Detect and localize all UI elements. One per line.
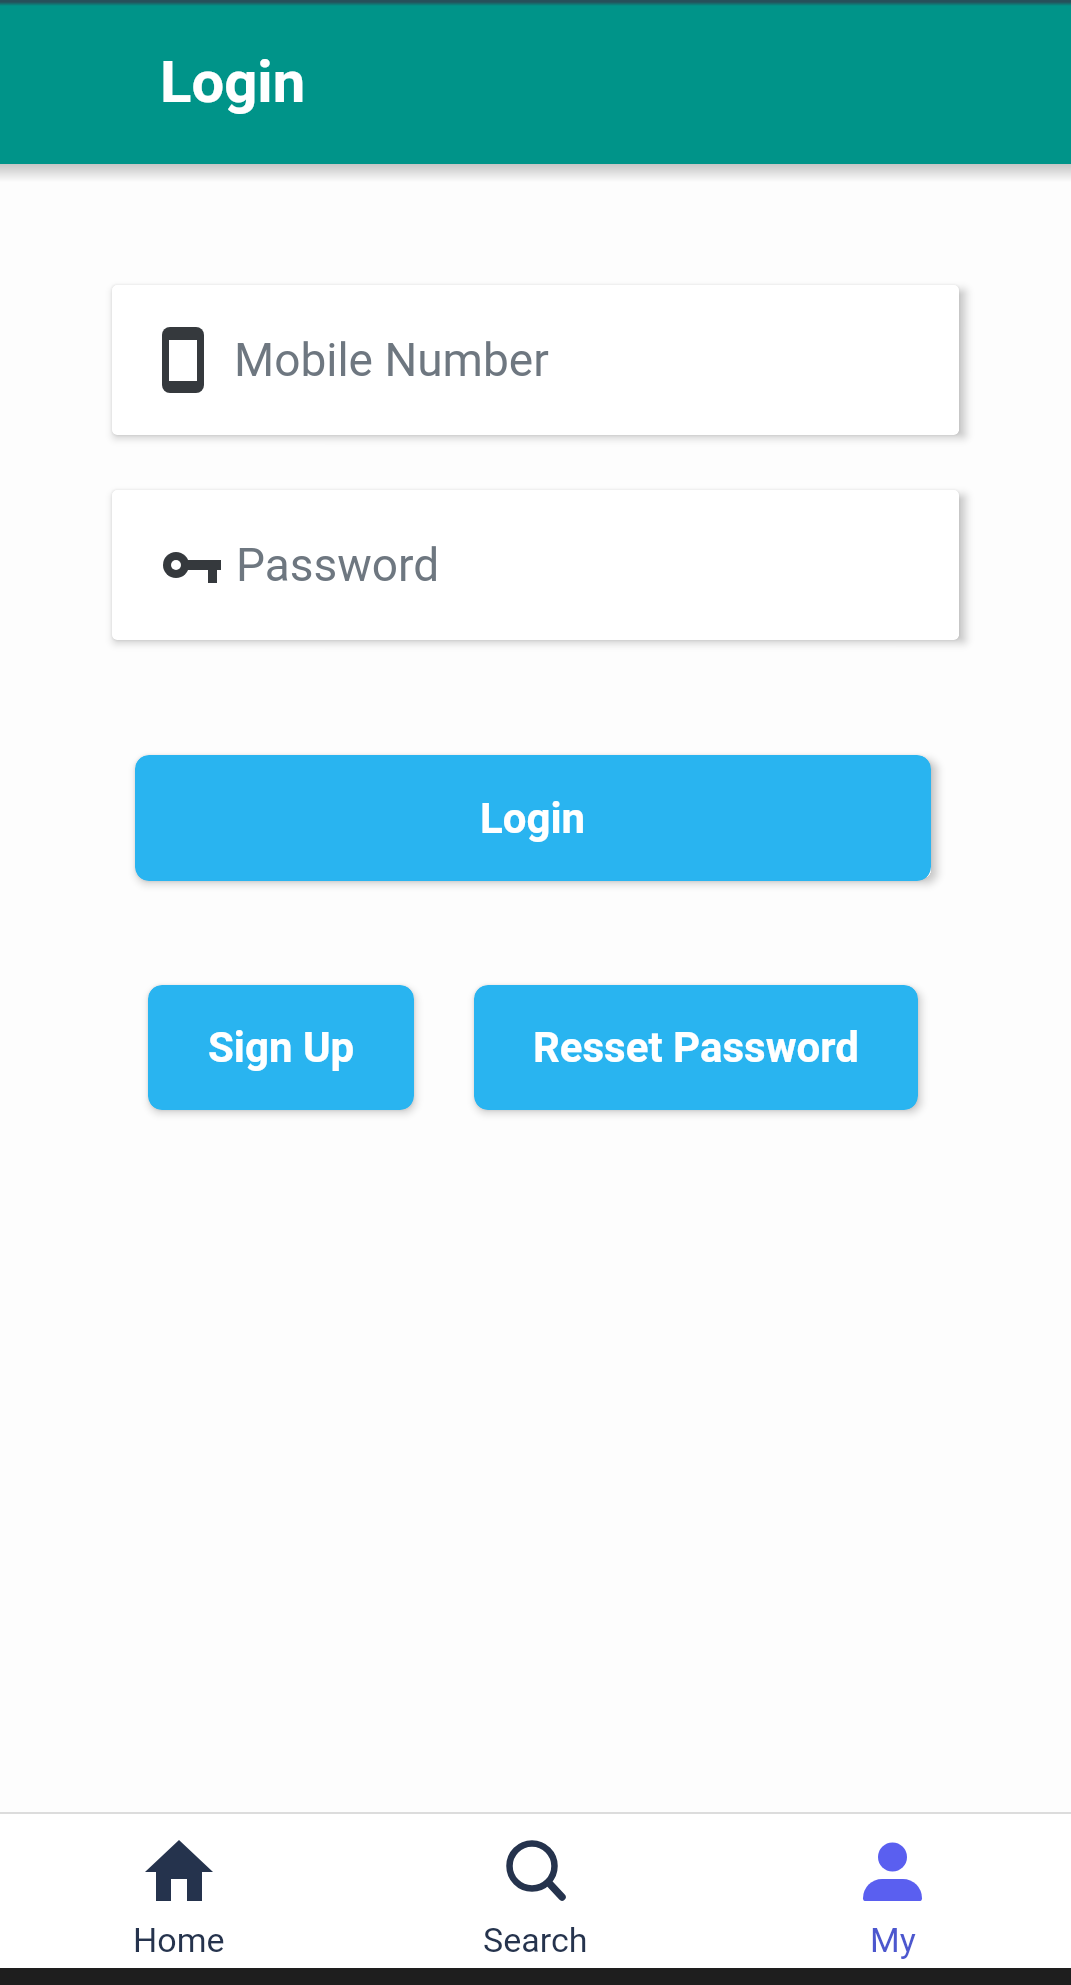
staticText: Search	[483, 1920, 588, 1960]
button[interactable]: Mobile Number	[112, 285, 959, 435]
staticText: Password	[236, 538, 440, 592]
button[interactable]: Login	[135, 755, 931, 881]
button[interactable]: Sign Up	[148, 985, 414, 1110]
staticText: Sign Up	[208, 1023, 355, 1072]
staticText: Resset Password	[533, 1023, 859, 1072]
staticText: Login	[480, 794, 586, 843]
button[interactable]: Resset Password	[474, 985, 918, 1110]
button[interactable]: Search	[357, 1814, 714, 1968]
staticText: Home	[133, 1920, 225, 1960]
staticText: My	[870, 1920, 916, 1960]
staticText: Login	[160, 48, 306, 116]
button[interactable]: Password	[112, 490, 959, 640]
button[interactable]: My	[714, 1814, 1071, 1968]
staticText: Mobile Number	[234, 333, 549, 387]
button[interactable]: Home	[0, 1814, 357, 1968]
